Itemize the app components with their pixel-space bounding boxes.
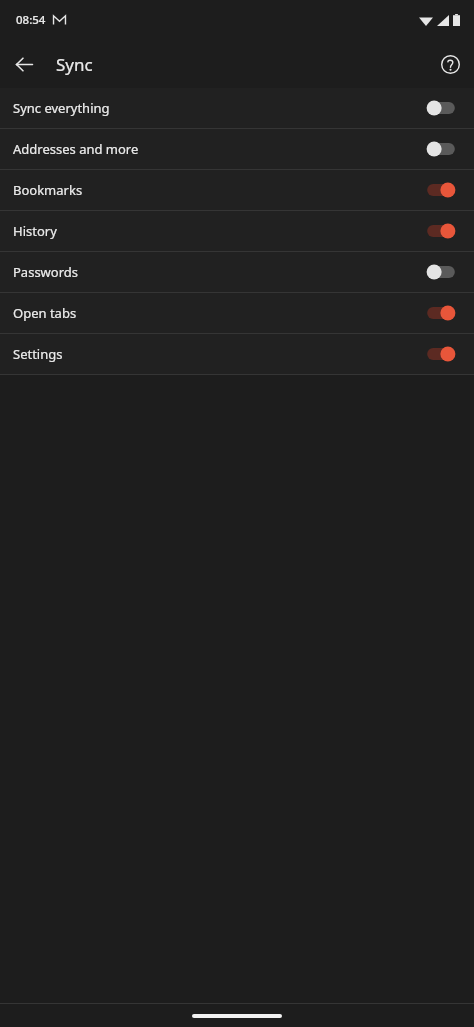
staticText: Sync everything xyxy=(13,99,426,117)
button[interactable]: Passwords xyxy=(0,252,474,292)
staticText: History xyxy=(13,222,426,240)
button[interactable]: Open tabs xyxy=(0,293,474,333)
button[interactable]: Addresses and more xyxy=(0,129,474,169)
staticText: 08:54 xyxy=(16,12,46,28)
button[interactable]: Settings xyxy=(0,334,474,374)
button[interactable]: History xyxy=(0,211,474,251)
button[interactable]: Bookmarks xyxy=(0,170,474,210)
button[interactable]: Sync everything xyxy=(0,88,474,128)
staticText: Passwords xyxy=(13,263,426,281)
staticText: Bookmarks xyxy=(13,181,426,199)
staticText: Open tabs xyxy=(13,304,426,322)
staticText: Addresses and more xyxy=(13,140,426,158)
staticText: Settings xyxy=(13,345,426,363)
button[interactable]: Back xyxy=(6,46,42,82)
staticText: Sync xyxy=(56,53,93,76)
button[interactable]: Help xyxy=(432,46,468,82)
